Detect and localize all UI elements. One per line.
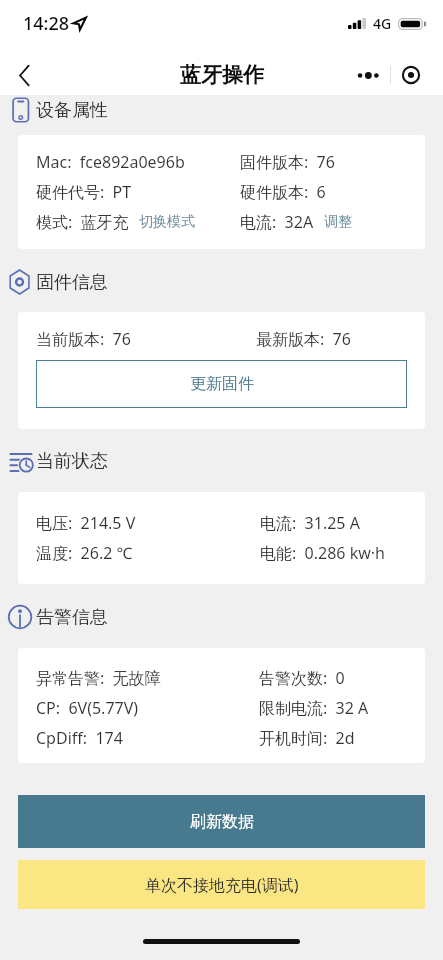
staticText: 告警信息	[36, 606, 108, 629]
button[interactable]: Back	[6, 57, 42, 93]
staticText: 调整	[324, 213, 352, 231]
button[interactable]: Close mini program	[391, 60, 431, 90]
staticText: 电流: 32A	[240, 211, 314, 233]
staticText: 温度: 26.2 ℃	[36, 542, 133, 564]
staticText: 硬件代号: PT	[36, 181, 132, 203]
staticText: Mac: fce892a0e96b	[36, 151, 185, 173]
staticText: 切换模式	[139, 213, 195, 231]
staticText: 电流: 31.25 A	[260, 512, 360, 534]
staticText: 开机时间: 2d	[259, 727, 355, 749]
staticText: 更新固件	[190, 374, 254, 394]
staticText: 设备属性	[36, 99, 108, 122]
staticText: 模式: 蓝牙充	[36, 211, 129, 233]
button[interactable]: 切换模式	[139, 213, 195, 231]
staticText: 蓝牙操作	[180, 62, 264, 88]
staticText: CpDiff: 174	[36, 727, 123, 749]
staticText: 限制电流: 32 A	[259, 697, 369, 719]
button[interactable]: More options	[348, 60, 390, 90]
staticText: 硬件版本: 6	[240, 181, 326, 203]
staticText: 固件版本: 76	[240, 151, 335, 173]
button[interactable]: 更新固件	[36, 360, 407, 408]
staticText: 异常告警: 无故障	[36, 667, 161, 689]
staticText: 电能: 0.286 kw·h	[260, 542, 385, 564]
staticText: 电压: 214.5 V	[36, 512, 136, 534]
staticText: 最新版本: 76	[256, 328, 351, 350]
button[interactable]: 单次不接地充电(调试)	[18, 860, 425, 909]
staticText: 刷新数据	[190, 812, 254, 832]
staticText: CP: 6V(5.77V)	[36, 697, 139, 719]
staticText: 14:28	[23, 11, 70, 36]
staticText: 固件信息	[36, 271, 108, 294]
staticText: 单次不接地充电(调试)	[145, 874, 299, 896]
staticText: 当前版本: 76	[36, 328, 131, 350]
button[interactable]: 刷新数据	[18, 795, 425, 848]
button[interactable]: 调整	[324, 213, 352, 231]
staticText: 4G	[373, 14, 392, 33]
staticText: 当前状态	[36, 450, 108, 473]
staticText: 告警次数: 0	[259, 667, 345, 689]
